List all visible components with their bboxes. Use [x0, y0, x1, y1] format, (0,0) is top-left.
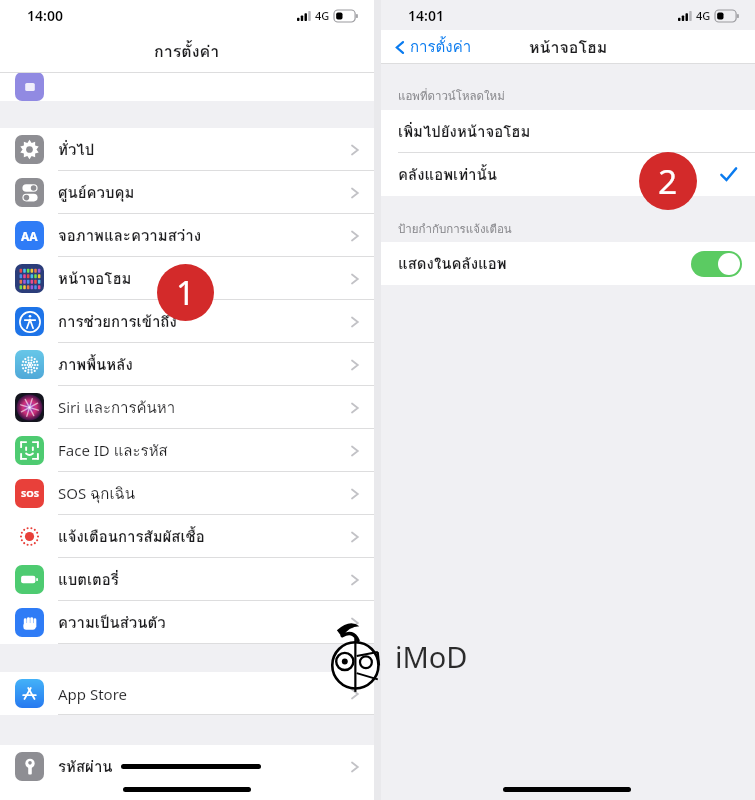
button[interactable]: App Store [0, 672, 374, 715]
button[interactable]: ความเป็นส่วนตัว [0, 601, 374, 644]
button[interactable]: แจ้งเตือนการสัมผัสเชื้อ [0, 515, 374, 558]
staticText: แจ้งเตือนการสัมผัสเชื้อ [58, 525, 350, 549]
staticText: คลังแอพเท่านั้น [398, 163, 498, 187]
staticText: ศูนย์ควบคุม [58, 181, 350, 205]
staticText: รหัสผ่าน [58, 755, 113, 779]
button[interactable]: Toggle [691, 251, 742, 277]
staticText: ป้ายกำกับการแจ้งเตือน [398, 220, 512, 238]
staticText: การตั้งค่า [154, 39, 220, 64]
button[interactable]: แสดงในคลังแอพ [381, 242, 755, 285]
staticText: ทั่วไป [58, 138, 350, 162]
button[interactable]: หน้าจอโฮม [0, 257, 374, 300]
staticText: การตั้งค่า [410, 35, 472, 59]
staticText: 4G [315, 8, 330, 23]
staticText: หน้าจอโฮม [529, 35, 608, 60]
staticText: การช่วยการเข้าถึง [58, 310, 350, 334]
button[interactable]: ศูนย์ควบคุม [0, 171, 374, 214]
staticText: Siri และการค้นหา [58, 396, 350, 420]
button[interactable]: ภาพพื้นหลัง [0, 343, 374, 386]
staticText: 2 [658, 158, 678, 204]
staticText: SOS ฉุกเฉิน [58, 482, 350, 506]
staticText: AA [21, 228, 38, 244]
staticText: แบตเตอรี่ [58, 568, 350, 592]
staticText: เพิ่มไปยังหน้าจอโฮม [398, 120, 531, 144]
staticText: iMoD [395, 637, 468, 676]
staticText: ความเป็นส่วนตัว [58, 611, 350, 635]
button[interactable]: Siri และการค้นหา [0, 386, 374, 429]
staticText: Face ID และรหัส [58, 439, 350, 463]
button[interactable]: ทั่วไป [0, 128, 374, 171]
staticText: 4G [696, 8, 711, 23]
button[interactable]: เพิ่มไปยังหน้าจอโฮม [381, 110, 755, 153]
staticText: 14:01 [408, 6, 444, 25]
staticText: ภาพพื้นหลัง [58, 353, 350, 377]
staticText: แสดงในคลังแอพ [398, 252, 507, 276]
staticText: แอพที่ดาวน์โหลดใหม่ [398, 87, 505, 105]
button[interactable]: การช่วยการเข้าถึง [0, 300, 374, 343]
staticText: หน้าจอโฮม [58, 267, 350, 291]
staticText: 14:00 [27, 6, 63, 25]
staticText: App Store [58, 684, 350, 704]
staticText: จอภาพและความสว่าง [58, 224, 350, 248]
button[interactable]: การตั้งค่า [391, 32, 476, 62]
button[interactable]: คลังแอพเท่านั้น [381, 153, 755, 196]
button[interactable]: Face ID และรหัส [0, 429, 374, 472]
button[interactable]: แบตเตอรี่ [0, 558, 374, 601]
button[interactable]: SOS [0, 472, 374, 515]
button[interactable]: AA [0, 214, 374, 257]
staticText: SOS [21, 487, 39, 500]
button[interactable]: รหัสผ่าน [0, 745, 374, 788]
staticText: 1 [176, 270, 195, 315]
